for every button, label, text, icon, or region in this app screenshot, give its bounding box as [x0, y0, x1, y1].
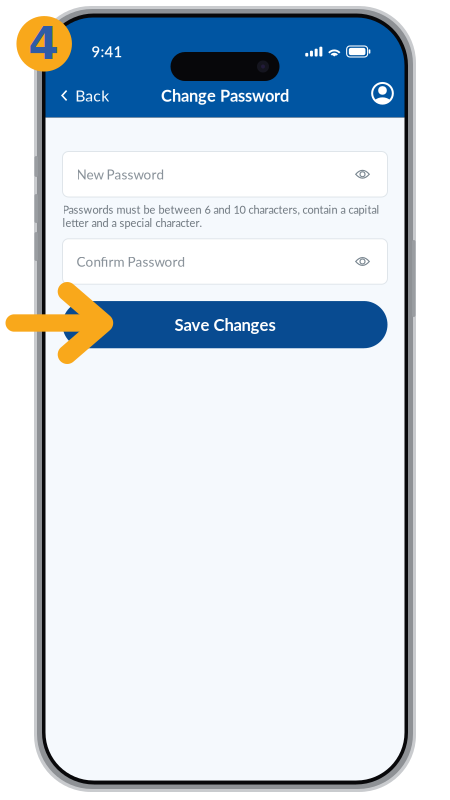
button[interactable]: Show new password [347, 154, 377, 194]
staticText: New Password [76, 166, 164, 182]
staticText: Change Password [161, 86, 289, 105]
button[interactable]: Account [360, 76, 404, 114]
staticText: Save Changes [174, 315, 275, 335]
staticText: 9:41 [91, 42, 122, 60]
button[interactable]: Save Changes [62, 301, 387, 348]
button[interactable]: Show confirm password [347, 241, 377, 281]
button[interactable]: Back [45, 76, 125, 114]
staticText: Passwords must be between 6 and 10 chara… [62, 203, 379, 229]
staticText: Confirm Password [76, 253, 185, 270]
staticText: 4 [28, 18, 59, 69]
staticText: Back [75, 86, 109, 105]
